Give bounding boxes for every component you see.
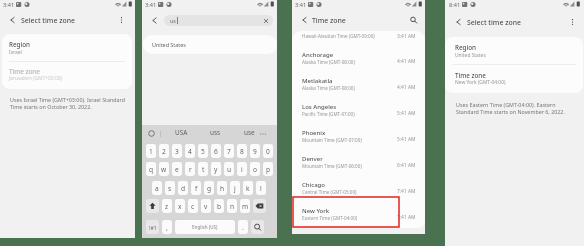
button[interactable]: Search <box>251 220 264 234</box>
button[interactable]: e <box>172 162 182 176</box>
staticText: Jerusalem (GMT+03:00) <box>9 75 63 82</box>
button[interactable]: More suggestions <box>259 130 267 138</box>
button[interactable]: uss <box>200 127 230 138</box>
button[interactable]: !#1 <box>146 220 159 234</box>
button[interactable]: USA <box>166 127 196 138</box>
staticText: Metlakatla <box>302 77 333 85</box>
staticText: us <box>170 17 176 24</box>
button[interactable]: us <box>164 15 273 26</box>
button[interactable]: m <box>240 199 250 213</box>
staticText: x <box>178 202 182 211</box>
button[interactable]: 3 <box>172 144 182 158</box>
button[interactable]: c <box>188 199 198 213</box>
button[interactable]: s <box>165 181 175 195</box>
button[interactable]: Backspace <box>253 199 266 213</box>
staticText: New York (GMT-04:00) <box>455 79 506 86</box>
staticText: Eastern Time (GMT-04:00) <box>302 215 358 221</box>
button[interactable]: Time zone <box>2 61 132 89</box>
button[interactable]: Region <box>2 34 132 62</box>
button[interactable]: q <box>146 162 156 176</box>
staticText: 8:41 <box>449 1 461 9</box>
button[interactable]: Hawaii-Aleutian Time (GMT-09:00) <box>292 31 425 44</box>
button[interactable]: 5 <box>198 144 208 158</box>
button[interactable]: j <box>230 181 240 195</box>
button[interactable]: 9 <box>250 144 260 158</box>
button[interactable]: i <box>237 162 247 176</box>
button[interactable]: w <box>159 162 169 176</box>
button[interactable]: o <box>250 162 260 176</box>
button[interactable]: l <box>256 181 266 195</box>
button[interactable]: English (US) <box>175 220 235 234</box>
button[interactable]: h <box>217 181 227 195</box>
button[interactable]: u <box>224 162 234 176</box>
button[interactable]: 0 <box>263 144 273 158</box>
button[interactable]: p <box>263 162 273 176</box>
button[interactable]: Shift <box>146 199 159 213</box>
button[interactable]: g <box>204 181 214 195</box>
button[interactable]: 6 <box>211 144 221 158</box>
staticText: 3:41 <box>295 1 307 9</box>
staticText: h <box>220 184 225 193</box>
staticText: Region <box>9 40 30 49</box>
button[interactable]: y <box>211 162 221 176</box>
button[interactable]: Los Angeles <box>292 96 425 122</box>
button[interactable]: Navigate up <box>298 13 311 27</box>
staticText: USA <box>175 128 188 137</box>
button[interactable]: Metlakatla <box>292 70 425 96</box>
staticText: a <box>155 184 159 193</box>
button[interactable]: b <box>214 199 224 213</box>
staticText: , <box>166 223 168 232</box>
button[interactable]: Anchorage <box>292 44 425 70</box>
button[interactable]: k <box>243 181 253 195</box>
button[interactable]: Denver <box>292 148 425 174</box>
staticText: Time zone <box>455 71 486 80</box>
button[interactable]: a <box>152 181 162 195</box>
button[interactable]: x <box>175 199 185 213</box>
staticText: Select time zone <box>21 16 75 25</box>
button[interactable]: r <box>185 162 195 176</box>
button[interactable]: t <box>198 162 208 176</box>
button[interactable]: use <box>234 127 264 138</box>
button[interactable]: 8 <box>237 144 247 158</box>
staticText: y <box>214 165 218 174</box>
staticText: Alaska Time (GMT-08:00) <box>302 85 355 91</box>
button[interactable]: Navigate up <box>452 15 465 29</box>
staticText: 6:41 AM <box>397 162 416 169</box>
button[interactable]: More options <box>566 15 579 29</box>
button[interactable]: Emoji <box>148 130 155 137</box>
button[interactable]: , <box>162 220 172 234</box>
staticText: q <box>149 165 154 174</box>
button[interactable]: . <box>238 220 248 234</box>
button[interactable]: New York <box>292 200 425 226</box>
button[interactable]: 1 <box>146 144 156 158</box>
staticText: 1 <box>149 147 153 156</box>
button[interactable]: Chicago <box>292 174 425 200</box>
staticText: English (US) <box>192 224 218 230</box>
staticText: w <box>161 165 167 174</box>
staticText: 4:41 AM <box>397 84 416 91</box>
staticText: b <box>217 202 222 211</box>
button[interactable]: 2 <box>159 144 169 158</box>
button[interactable]: Search <box>407 13 420 27</box>
staticText: 2 <box>162 147 166 156</box>
button[interactable]: More options <box>115 13 128 27</box>
button[interactable]: United States <box>143 35 277 54</box>
button[interactable]: Time zone <box>445 65 583 93</box>
button[interactable]: v <box>201 199 211 213</box>
button[interactable]: d <box>178 181 188 195</box>
button[interactable]: 7 <box>224 144 234 158</box>
button[interactable]: n <box>227 199 237 213</box>
button[interactable]: f <box>191 181 201 195</box>
button[interactable]: Navigate up <box>6 13 19 27</box>
button[interactable]: Region <box>445 37 583 65</box>
staticText: Phoenix <box>302 129 326 137</box>
staticText: 3 <box>175 147 179 156</box>
button[interactable]: z <box>162 199 172 213</box>
button[interactable]: Clear search <box>262 17 270 25</box>
button[interactable]: Navigate up <box>148 14 161 27</box>
staticText: n <box>230 202 235 211</box>
button[interactable]: 4 <box>185 144 195 158</box>
staticText: 9 <box>253 147 257 156</box>
staticText: l <box>260 184 262 193</box>
button[interactable]: Phoenix <box>292 122 425 148</box>
